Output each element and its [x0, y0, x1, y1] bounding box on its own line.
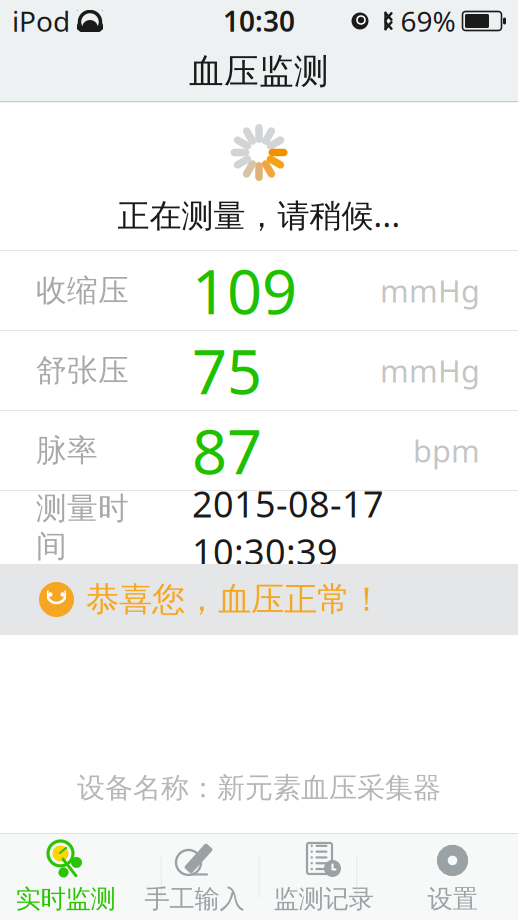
staticText: 75: [192, 330, 262, 411]
staticText: 血压监测: [189, 50, 329, 93]
staticText: bpm: [413, 430, 480, 471]
button[interactable]: 设置: [388, 834, 517, 920]
staticText: 正在测量，请稍候...: [117, 193, 400, 236]
staticText: 设置: [427, 883, 477, 914]
staticText: 设备名称：新元素血压采集器: [77, 771, 441, 805]
staticText: 109: [192, 250, 297, 331]
staticText: 收缩压: [36, 272, 129, 309]
staticText: 恭喜您，血压正常！: [86, 579, 383, 620]
staticText: 脉率: [36, 432, 98, 469]
staticText: 87: [192, 410, 262, 491]
staticText: iPod: [12, 2, 70, 40]
button[interactable]: 手工输入: [130, 834, 259, 920]
staticText: mmHg: [380, 270, 480, 311]
staticText: 69%: [400, 2, 455, 40]
button[interactable]: 监测记录: [259, 834, 388, 920]
staticText: 手工输入: [144, 883, 244, 914]
staticText: 实时监测: [15, 883, 115, 914]
staticText: 舒张压: [36, 352, 129, 389]
staticText: 监测记录: [273, 883, 373, 914]
staticText: 2015-08-17 10:30:39: [192, 480, 384, 575]
staticText: 测量时间: [36, 490, 129, 565]
staticText: 10:30: [223, 2, 295, 40]
staticText: mmHg: [380, 350, 480, 391]
button[interactable]: 实时监测: [1, 834, 130, 920]
